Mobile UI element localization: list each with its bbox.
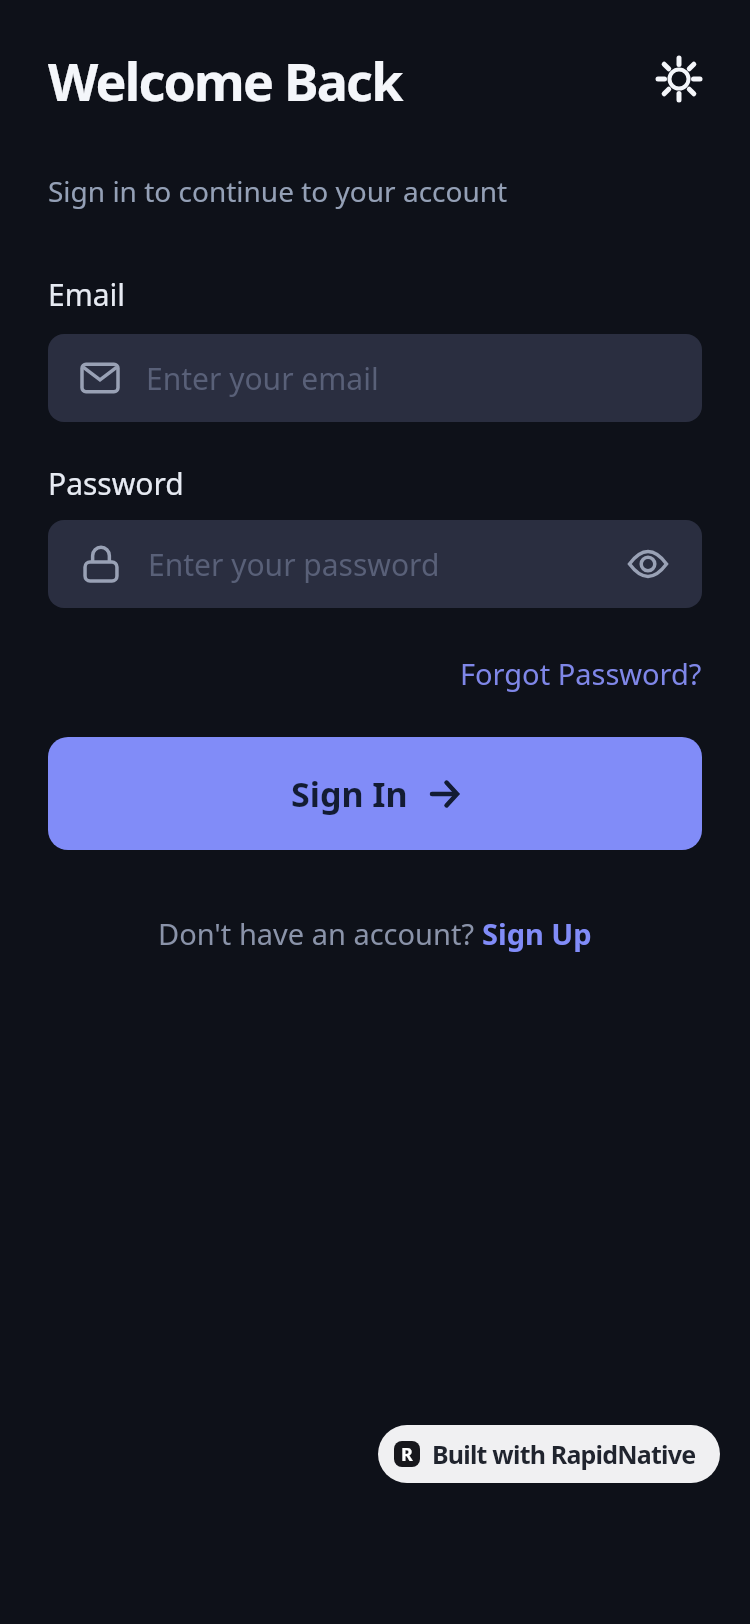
staticText: Password [48, 463, 184, 504]
button[interactable]: Enter your email [48, 334, 702, 422]
button[interactable]: Sign In [48, 737, 702, 850]
staticText: Sign Up [482, 914, 592, 953]
button[interactable]: Don't have an account? [48, 914, 702, 953]
staticText: R [401, 1442, 413, 1467]
button[interactable]: Enter your password [48, 520, 702, 608]
staticText: Sign In [291, 771, 408, 817]
staticText: Email [48, 274, 126, 315]
staticText: Sign in to continue to your account [48, 172, 508, 210]
button[interactable] [628, 544, 668, 584]
button[interactable]: Forgot Password? [460, 654, 702, 693]
staticText: Don't have an account? [158, 914, 482, 953]
staticText: Enter your password [148, 544, 440, 585]
button[interactable]: R [378, 1425, 720, 1483]
staticText: Enter your email [146, 358, 379, 399]
button[interactable] [656, 56, 702, 102]
staticText: Welcome Back [48, 45, 402, 116]
staticText: Built with RapidNative [432, 1437, 696, 1471]
